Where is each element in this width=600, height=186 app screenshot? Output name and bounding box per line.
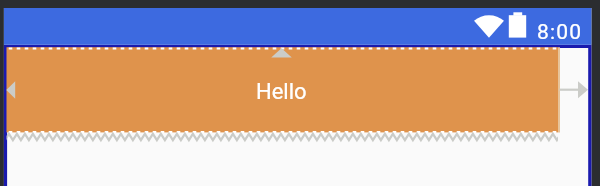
button[interactable]: 8:00	[534, 14, 586, 40]
staticText: Hello	[256, 79, 307, 105]
button[interactable]: Wi-Fi	[470, 10, 506, 40]
button[interactable]: Battery	[506, 10, 530, 40]
staticText: 8:00	[537, 20, 583, 45]
button[interactable]: Hello	[5, 49, 558, 135]
